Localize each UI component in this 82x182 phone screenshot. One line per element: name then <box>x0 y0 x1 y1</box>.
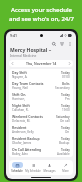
staticText: Resident Backup <box>12 136 40 141</box>
button[interactable]: Next day <box>66 60 73 67</box>
staticText: Shift On. <box>12 92 27 97</box>
button[interactable]: Schedule <box>9 162 25 173</box>
button[interactable]: Previous day <box>9 60 16 67</box>
staticText: Today <box>61 71 70 75</box>
staticText: Saturday <box>56 115 70 119</box>
staticText: More <box>62 169 69 173</box>
staticText: Weekend Contacts <box>12 114 43 119</box>
staticText: Young, Neil <box>12 86 29 90</box>
staticText: Today <box>61 93 70 97</box>
staticText: Bolts <box>62 82 70 86</box>
staticText: Delacroix, M. <box>12 119 31 123</box>
staticText: Today <box>61 148 70 152</box>
button[interactable]: Resident <box>9 124 73 135</box>
button[interactable]: Search <box>51 41 56 46</box>
button[interactable]: My Schedule <box>25 162 41 173</box>
button[interactable]: Shift On. <box>9 91 73 102</box>
staticText: On <box>65 130 70 134</box>
button[interactable]: Weekend Contacts <box>9 113 73 124</box>
button[interactable]: Night Shift <box>9 102 73 113</box>
staticText: Internal Medicine <box>10 54 37 58</box>
staticText: Today <box>61 137 70 141</box>
staticText: Today <box>61 126 70 130</box>
staticText: Access your schedule <box>11 6 72 14</box>
staticText: Bailey, Alex <box>12 152 28 156</box>
staticText: and see who's on, 24/7 <box>9 15 74 23</box>
staticText: Backup <box>59 141 70 145</box>
staticText: Okafor, James <box>12 141 32 145</box>
staticText: Secondary <box>55 86 70 90</box>
button[interactable]: More <box>57 162 73 173</box>
button[interactable]: Day Team Contacts <box>9 80 73 91</box>
staticText: Pm <box>65 97 70 101</box>
staticText: Callahan, R. <box>12 108 29 112</box>
staticText: 19:00 <box>62 108 70 112</box>
staticText: Available <box>57 152 70 156</box>
staticText: Resident <box>12 125 27 130</box>
staticText: Day Shift <box>12 70 27 75</box>
button[interactable]: On Call Attending <box>9 146 73 157</box>
staticText: Thu, November 14 <box>26 61 57 66</box>
staticText: Nguyen, A. <box>12 75 28 79</box>
staticText: 07:00 <box>62 75 70 79</box>
button[interactable]: Day Shift <box>9 69 73 80</box>
staticText: Schedule <box>11 169 23 173</box>
staticText: My Schedule <box>25 169 41 173</box>
staticText: Today <box>61 104 70 108</box>
button[interactable]: Filter <box>59 41 64 46</box>
staticText: On Call Attending <box>12 147 42 152</box>
staticText: Mercy Hospital – <box>10 47 52 54</box>
staticText: Day Team Contacts <box>12 81 44 86</box>
staticText: On call <box>60 119 70 123</box>
button[interactable]: Messages <box>41 162 57 173</box>
staticText: Harrison, <box>12 97 26 101</box>
button[interactable]: Previous day <box>9 60 73 67</box>
button[interactable]: Resident Backup <box>9 135 73 146</box>
staticText: Night Shift <box>12 103 30 108</box>
staticText: 9:41 <box>10 33 17 38</box>
staticText: Messages <box>43 169 56 173</box>
button[interactable]: More options <box>67 41 72 46</box>
staticText: Anderson, Kelly <box>12 130 34 134</box>
